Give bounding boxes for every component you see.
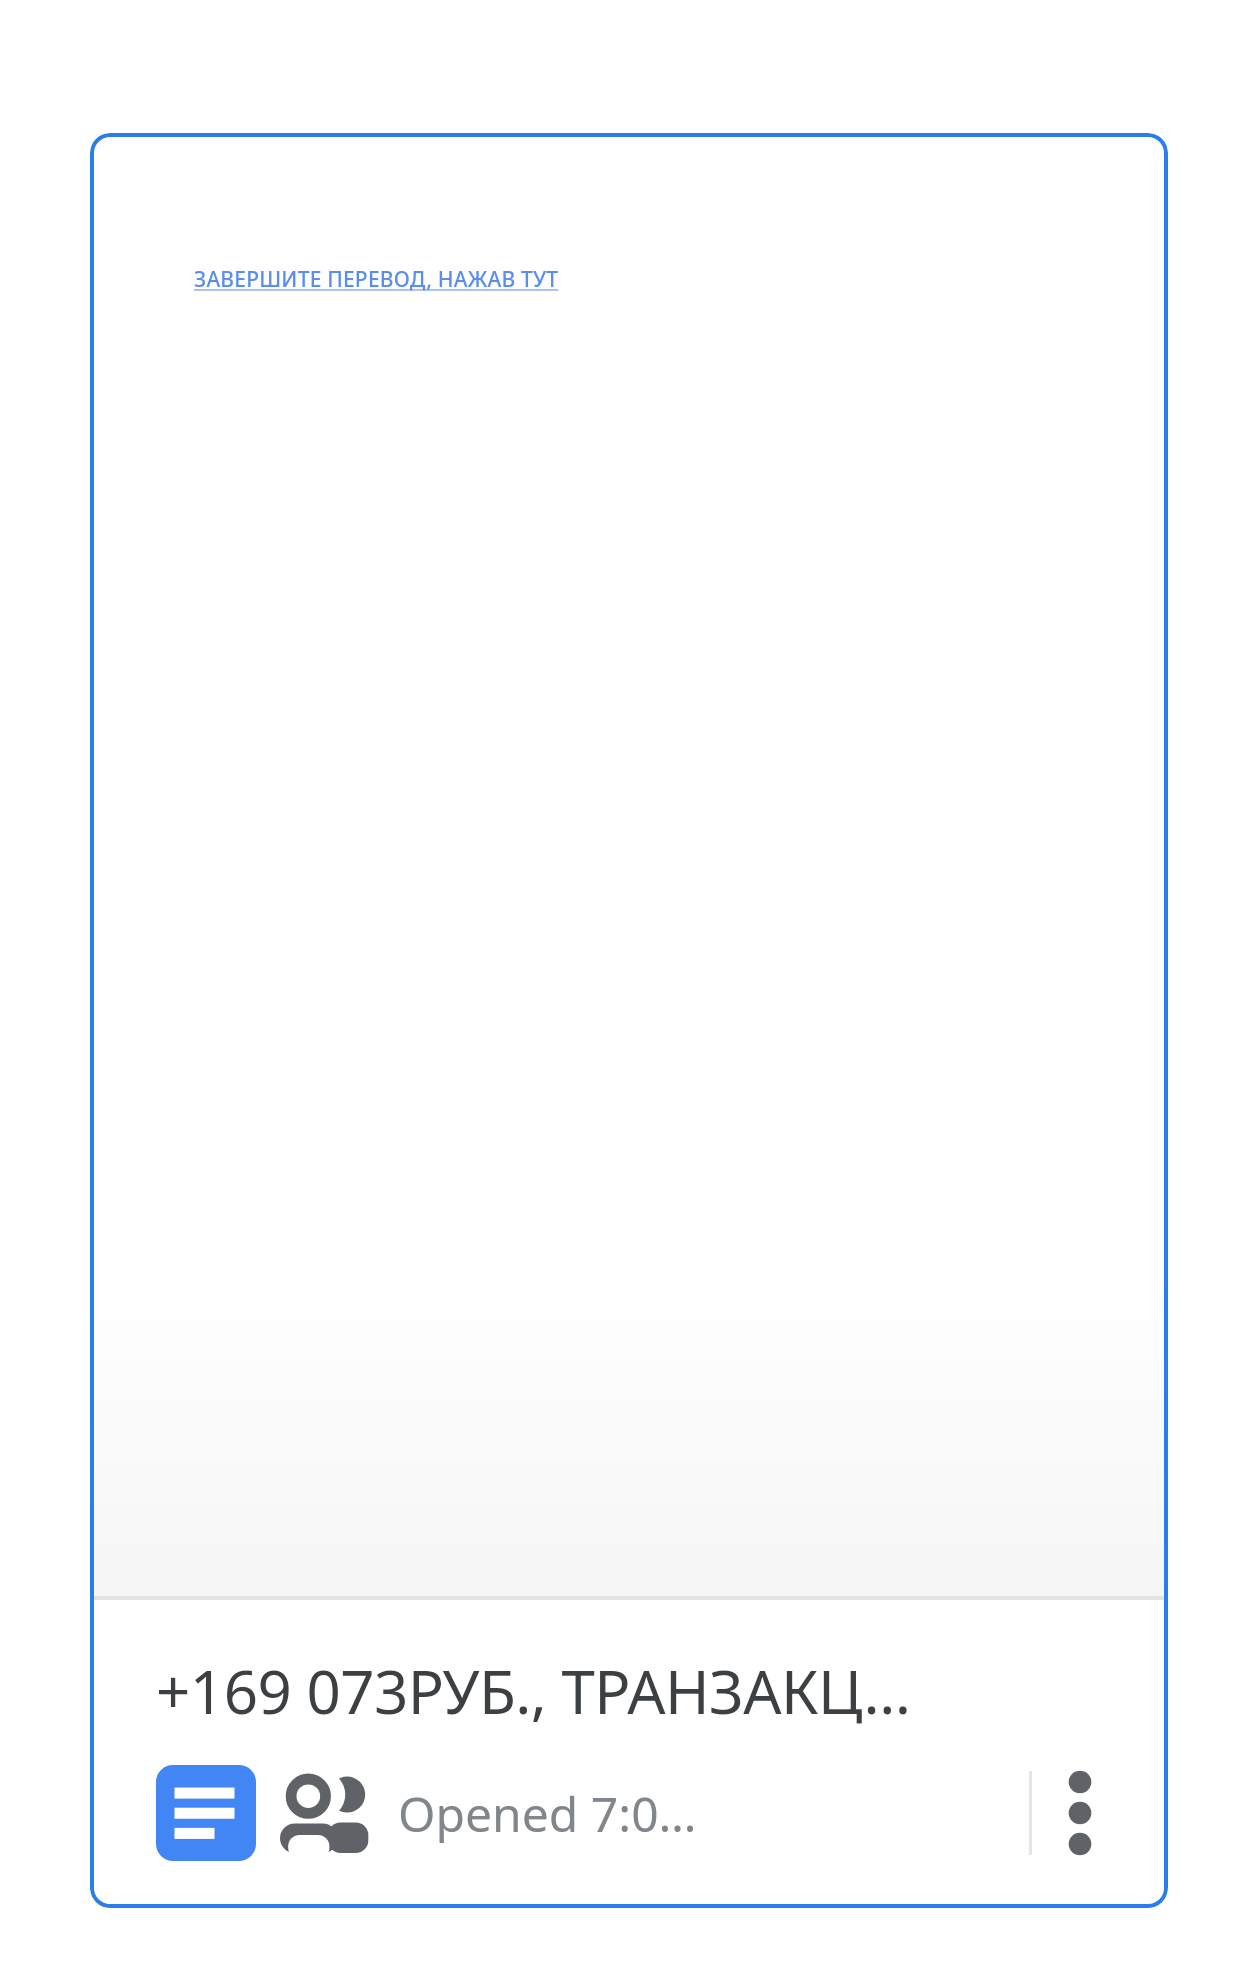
button[interactable]: Shared with people xyxy=(280,1773,376,1853)
button[interactable]: Open document xyxy=(156,1765,256,1861)
button[interactable]: More options xyxy=(1032,1758,1128,1868)
button[interactable]: ЗАВЕРШИТЕ ПЕРЕВОД, НАЖАВ ТУТ xyxy=(194,265,559,294)
staticText: +169 073РУБ., ТРАНЗАКЦ… xyxy=(156,1650,911,1732)
staticText: Opened 7:09 AM xyxy=(398,1781,713,1846)
